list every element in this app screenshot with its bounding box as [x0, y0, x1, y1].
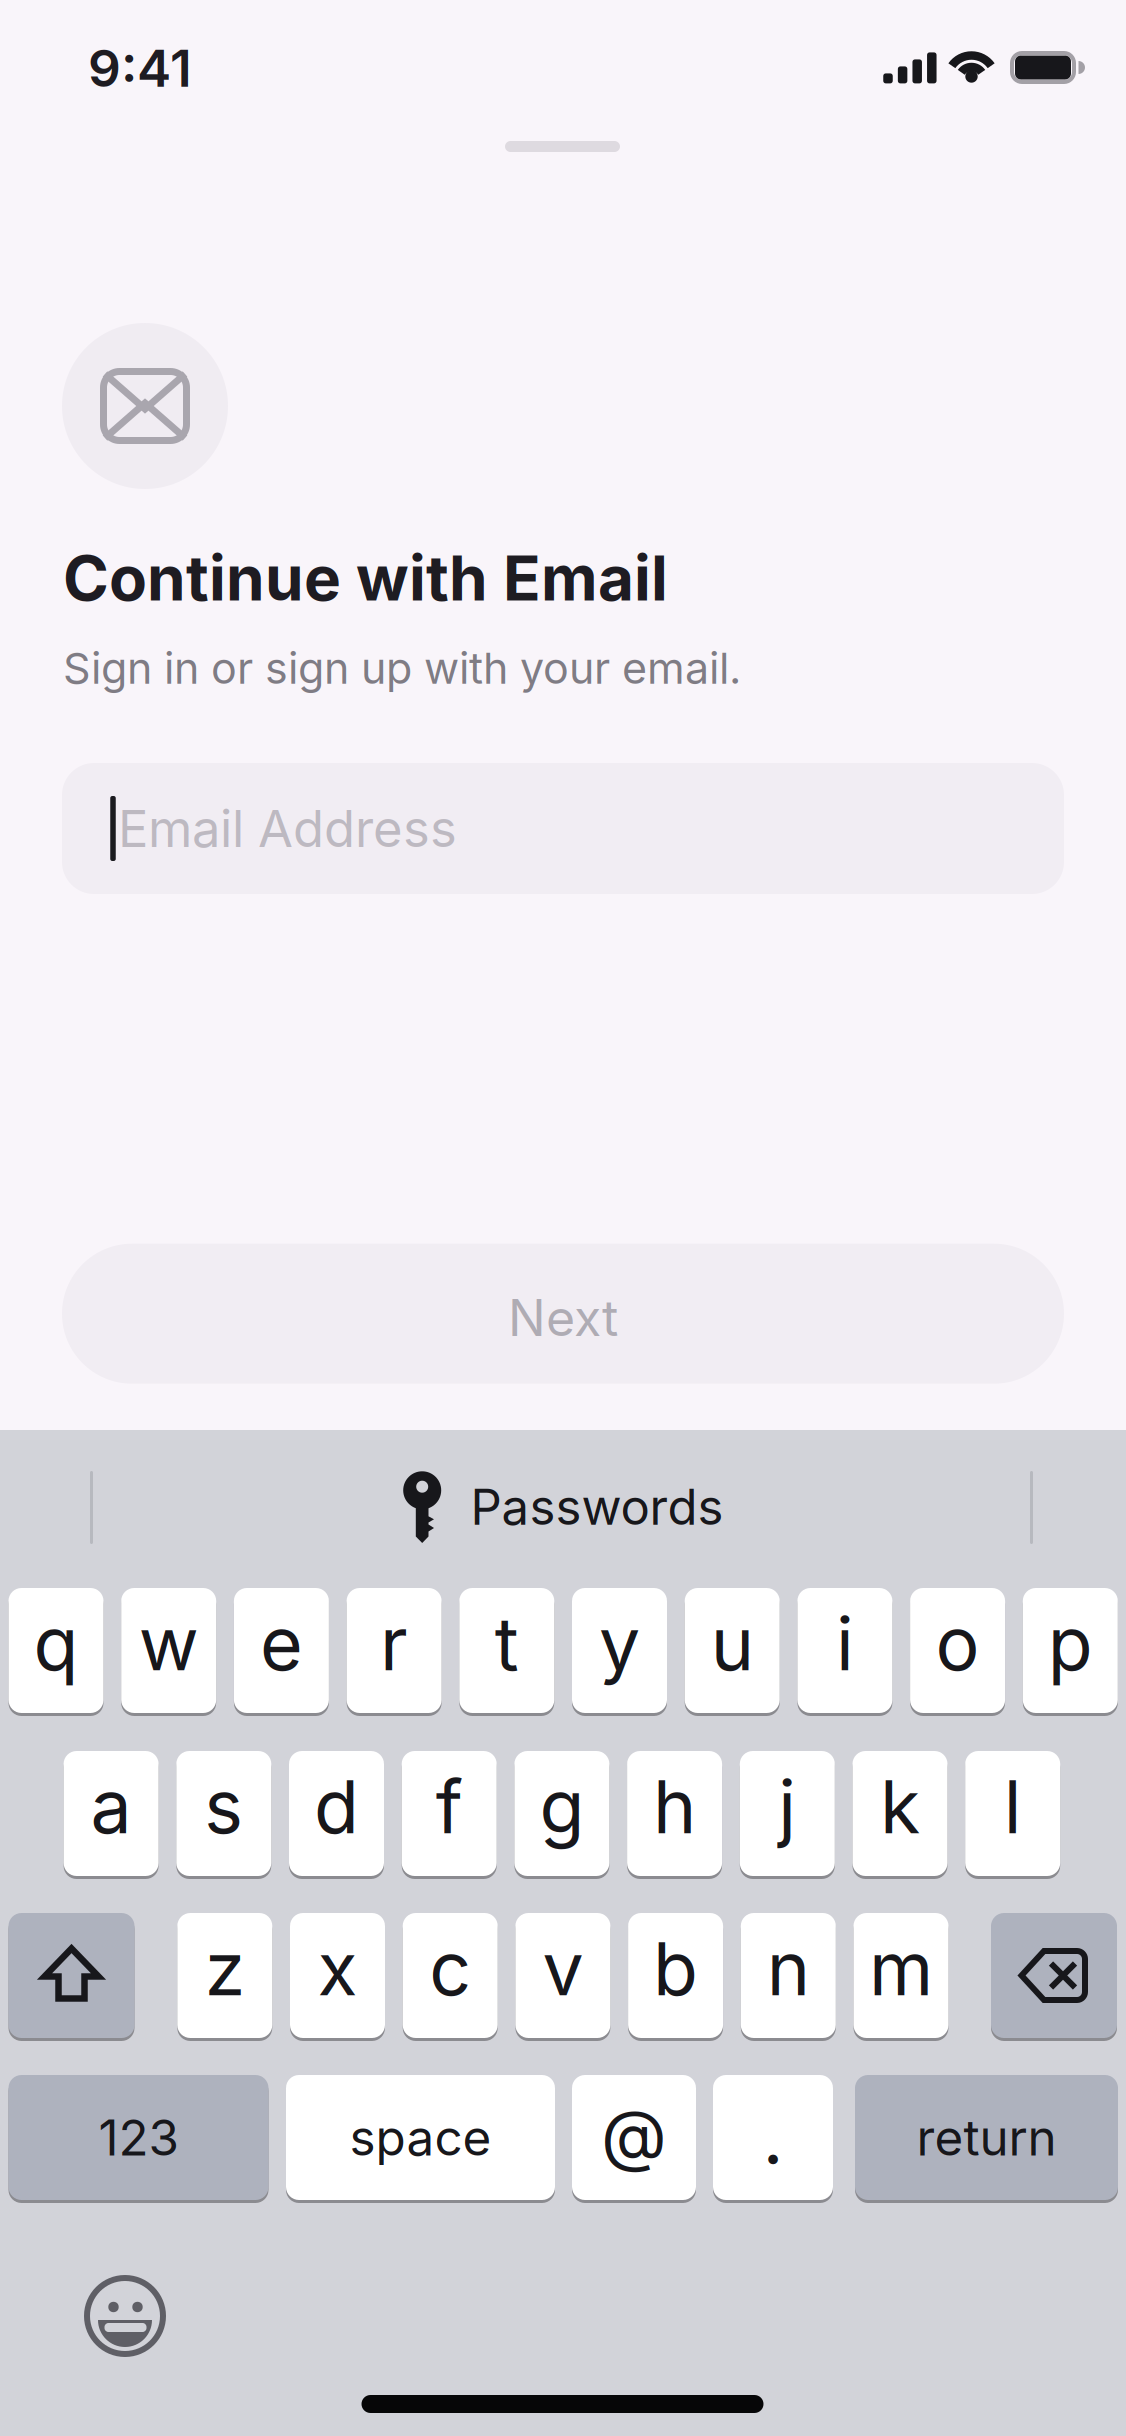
button[interactable]: d: [289, 1749, 384, 1877]
button[interactable]: r: [347, 1586, 442, 1714]
staticText: 123: [98, 2108, 178, 2167]
staticText: Passwords: [470, 1477, 723, 1537]
button[interactable]: Emoji: [84, 2275, 166, 2357]
staticText: return: [916, 2108, 1056, 2167]
staticText: Sign in or sign up with your email.: [63, 642, 741, 694]
staticText: z: [205, 1924, 245, 2013]
staticText: k: [880, 1762, 920, 1851]
button[interactable]: i: [797, 1586, 892, 1714]
button[interactable]: @: [572, 2073, 696, 2201]
staticText: l: [1004, 1762, 1022, 1851]
staticText: n: [767, 1924, 810, 2013]
staticText: 9:41: [88, 37, 192, 99]
button[interactable]: s: [176, 1749, 271, 1877]
button[interactable]: t: [459, 1586, 554, 1714]
button[interactable]: b: [628, 1911, 723, 2039]
button[interactable]: Next: [62, 1244, 1064, 1384]
button[interactable]: k: [852, 1749, 947, 1877]
staticText: d: [314, 1762, 359, 1851]
staticText: y: [599, 1599, 640, 1688]
button[interactable]: p: [1023, 1586, 1118, 1714]
button[interactable]: x: [290, 1911, 385, 2039]
staticText: j: [778, 1762, 796, 1851]
button[interactable]: return: [855, 2073, 1118, 2201]
button[interactable]: Delete: [991, 1911, 1117, 2039]
button[interactable]: n: [741, 1911, 836, 2039]
staticText: g: [539, 1762, 584, 1851]
staticText: h: [653, 1762, 696, 1851]
staticText: v: [542, 1924, 583, 2013]
staticText: space: [349, 2108, 491, 2167]
staticText: x: [317, 1924, 357, 2013]
staticText: i: [836, 1599, 854, 1688]
button[interactable]: Passwords: [402, 1462, 723, 1552]
button[interactable]: .: [713, 2073, 833, 2201]
button[interactable]: Shift: [8, 1911, 134, 2039]
staticText: @: [601, 2093, 667, 2176]
button[interactable]: a: [64, 1749, 159, 1877]
button[interactable]: u: [685, 1586, 780, 1714]
staticText: q: [33, 1599, 78, 1688]
button[interactable]: space: [286, 2073, 555, 2201]
button[interactable]: o: [910, 1586, 1005, 1714]
button[interactable]: q: [8, 1586, 103, 1714]
staticText: w: [139, 1599, 199, 1688]
button[interactable]: c: [403, 1911, 498, 2039]
button[interactable]: m: [853, 1911, 948, 2039]
staticText: u: [711, 1599, 754, 1688]
button[interactable]: e: [234, 1586, 329, 1714]
staticText: b: [653, 1924, 698, 2013]
staticText: .: [762, 2093, 783, 2182]
staticText: o: [936, 1599, 980, 1688]
staticText: Email Address: [118, 798, 457, 859]
staticText: Next: [508, 1287, 618, 1348]
staticText: p: [1048, 1599, 1093, 1688]
button[interactable]: h: [627, 1749, 722, 1877]
staticText: s: [204, 1762, 243, 1851]
staticText: c: [429, 1924, 471, 2013]
button[interactable]: j: [740, 1749, 835, 1877]
button[interactable]: l: [965, 1749, 1060, 1877]
button[interactable]: y: [572, 1586, 667, 1714]
staticText: Continue with Email: [63, 540, 668, 615]
button[interactable]: f: [402, 1749, 497, 1877]
staticText: a: [91, 1762, 132, 1851]
staticText: f: [436, 1762, 463, 1851]
staticText: m: [869, 1924, 933, 2013]
staticText: r: [380, 1599, 408, 1688]
button[interactable]: w: [121, 1586, 216, 1714]
button[interactable]: z: [177, 1911, 272, 2039]
button[interactable]: g: [514, 1749, 609, 1877]
staticText: t: [495, 1599, 519, 1688]
button[interactable]: 123: [8, 2073, 268, 2201]
button[interactable]: Email Address: [62, 763, 1064, 894]
button[interactable]: v: [515, 1911, 610, 2039]
staticText: e: [260, 1599, 303, 1688]
